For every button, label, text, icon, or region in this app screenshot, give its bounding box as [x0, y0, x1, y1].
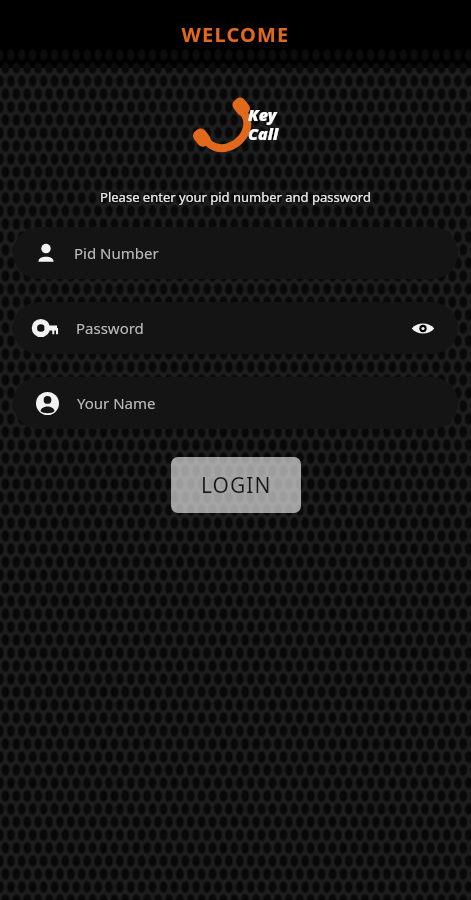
staticText: Please enter your pid number and passwor… [100, 188, 371, 206]
staticText: WELCOME [181, 21, 290, 48]
staticText: Your Name [77, 393, 438, 413]
staticText: Pid Number [74, 243, 438, 263]
other: Your name [35, 391, 60, 416]
other: Password [35, 316, 59, 340]
staticText: Call [248, 123, 279, 145]
button[interactable]: Pid number [13, 227, 458, 279]
button[interactable]: Show password [408, 313, 438, 343]
staticText: LOGIN [201, 471, 272, 500]
button[interactable]: LOGIN [171, 457, 301, 513]
staticText: Password [76, 318, 408, 338]
button[interactable]: Password [13, 302, 458, 354]
button[interactable]: Your name [13, 377, 458, 429]
other: Pid number [35, 242, 57, 264]
staticText: Key [248, 104, 277, 126]
